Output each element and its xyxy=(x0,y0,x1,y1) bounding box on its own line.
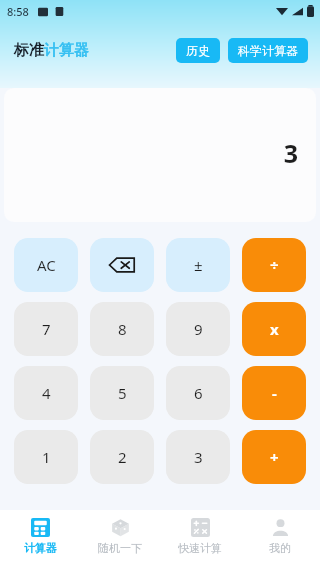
button[interactable]: 2 xyxy=(90,430,154,484)
button[interactable]: 6 xyxy=(166,366,230,420)
button[interactable]: 1 xyxy=(14,430,78,484)
staticText: 3 xyxy=(283,136,298,170)
button[interactable]: 4 xyxy=(14,366,78,420)
staticText: ÷ xyxy=(270,255,279,275)
button[interactable]: x xyxy=(242,302,306,356)
staticText: 计算器 xyxy=(24,541,57,555)
staticText: 4 xyxy=(42,383,51,403)
staticText: 6 xyxy=(194,383,203,403)
staticText: 5 xyxy=(118,383,127,403)
button[interactable]: ÷ xyxy=(242,238,306,292)
button[interactable]: 9 xyxy=(166,302,230,356)
staticText: 科学计算器 xyxy=(238,43,298,58)
button[interactable]: - xyxy=(242,366,306,420)
button[interactable]: AC xyxy=(14,238,78,292)
staticText: ± xyxy=(194,255,203,275)
staticText: 我的 xyxy=(269,541,291,555)
button[interactable]: 快速计算 xyxy=(160,510,240,568)
button[interactable]: 随机一下 xyxy=(80,510,160,568)
button[interactable]: 5 xyxy=(90,366,154,420)
staticText: x xyxy=(270,319,279,339)
staticText: 9 xyxy=(194,319,203,339)
button[interactable]: 我的 xyxy=(240,510,320,568)
button[interactable]: 8 xyxy=(90,302,154,356)
staticText: 快速计算 xyxy=(178,541,222,555)
button[interactable]: 科学计算器 xyxy=(228,38,308,63)
staticText: + xyxy=(270,447,279,467)
staticText: 计算器 xyxy=(44,41,89,60)
staticText: 7 xyxy=(42,319,51,339)
button[interactable]: ± xyxy=(166,238,230,292)
staticText: 随机一下 xyxy=(98,541,142,555)
staticText: - xyxy=(272,383,277,403)
button[interactable]: 3 xyxy=(166,430,230,484)
staticText: 标准 xyxy=(14,41,44,60)
button[interactable]: 7 xyxy=(14,302,78,356)
staticText: 2 xyxy=(118,447,127,467)
staticText: 1 xyxy=(42,447,51,467)
staticText: 8 xyxy=(118,319,127,339)
staticText: AC xyxy=(37,255,56,275)
button[interactable]: 计算器 xyxy=(0,510,80,568)
button[interactable]: Backspace xyxy=(90,238,154,292)
button[interactable]: 历史 xyxy=(176,38,220,63)
staticText: 3 xyxy=(194,447,203,467)
button[interactable]: + xyxy=(242,430,306,484)
staticText: 8:58 xyxy=(7,4,29,19)
staticText: 历史 xyxy=(186,43,210,58)
